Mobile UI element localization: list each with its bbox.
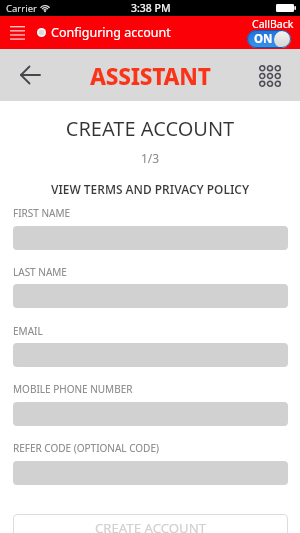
staticText: ON [254,31,273,47]
staticText: CallBack [252,17,294,31]
button[interactable]: Menu [4,20,30,46]
staticText: 1/3 [0,150,300,166]
staticText: VIEW TERMS AND PRIVACY POLICY [0,181,300,197]
staticText: CREATE ACCOUNT [95,519,207,533]
staticText: EMAIL [13,324,43,338]
staticText: ASSISTANT [90,61,211,92]
button[interactable]: CREATE ACCOUNT [13,514,288,533]
staticText: CREATE ACCOUNT [0,115,300,142]
staticText: Carrier [6,2,37,15]
staticText: Configuring account [51,24,171,41]
staticText: FIRST NAME [13,206,71,220]
staticText: REFER CODE (OPTIONAL CODE) [13,441,159,455]
staticText: LAST NAME [13,265,67,279]
button[interactable]: VIEW TERMS AND PRIVACY POLICY [0,181,300,197]
button[interactable]: Apps grid [255,60,285,90]
staticText: MOBILE PHONE NUMBER [13,382,133,396]
button[interactable]: CallBack toggle [247,30,291,48]
button[interactable]: Back [16,61,44,89]
staticText: 3:38 PM [131,1,171,15]
